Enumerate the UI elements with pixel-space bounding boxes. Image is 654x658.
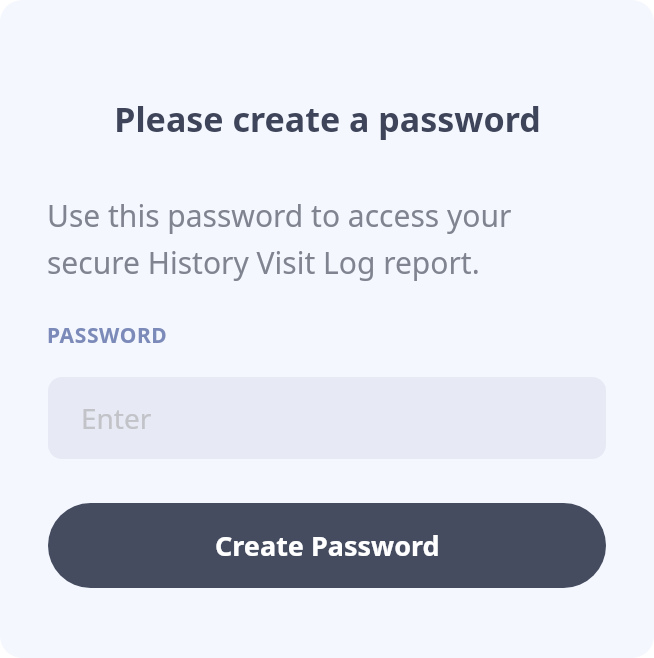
staticText: Create Password [215, 527, 440, 564]
button[interactable]: Enter [48, 377, 606, 459]
staticText: Please create a password [114, 96, 541, 142]
staticText: PASSWORD [47, 321, 168, 350]
staticText: Use this password to access your secure … [47, 195, 512, 283]
staticText: Enter [81, 399, 152, 437]
button[interactable]: Create Password [48, 503, 606, 588]
